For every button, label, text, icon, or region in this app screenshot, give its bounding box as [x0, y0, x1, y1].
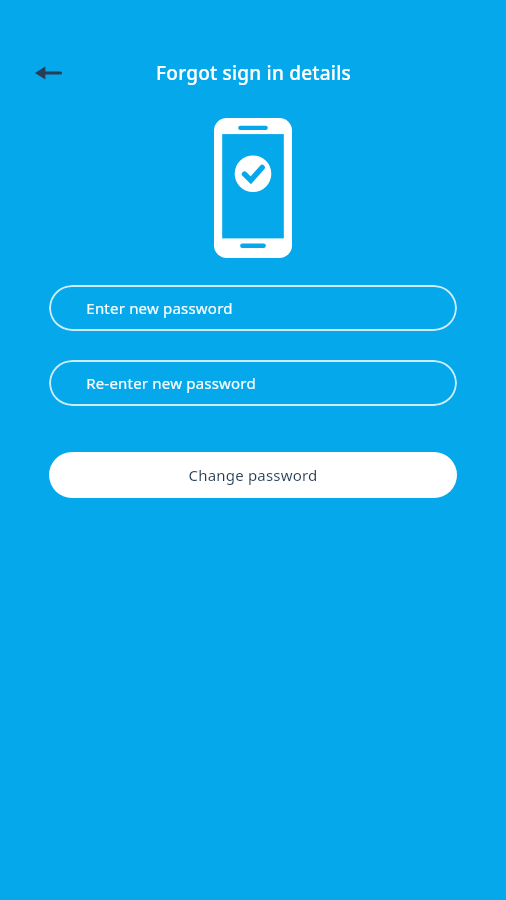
button[interactable]: Change password — [49, 452, 457, 498]
button[interactable]: Back — [24, 49, 72, 97]
staticText: Enter new password — [86, 298, 233, 318]
button[interactable]: Re-enter new password — [49, 360, 457, 406]
button[interactable]: Enter new password — [49, 285, 457, 331]
staticText: Forgot sign in details — [156, 60, 351, 86]
staticText: Re-enter new password — [86, 373, 256, 393]
staticText: Change password — [188, 465, 318, 485]
